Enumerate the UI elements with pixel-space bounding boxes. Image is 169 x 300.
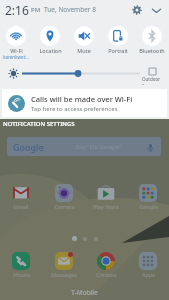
button[interactable]: Bluetooth <box>135 26 169 54</box>
staticText: Wi-Fi <box>10 47 23 54</box>
staticText: Apps <box>142 271 155 278</box>
staticText: Chrome <box>96 271 117 278</box>
staticText: NOTIFICATION SETTINGS <box>3 120 75 128</box>
button[interactable]: Collapse <box>148 2 164 18</box>
button[interactable]: Google <box>128 184 168 210</box>
staticText: Play Store <box>93 203 119 210</box>
staticText: Camera <box>54 203 75 210</box>
button[interactable]: Apps <box>128 252 168 278</box>
button[interactable]: Gmail <box>1 184 41 210</box>
staticText: Bluetooth <box>139 47 165 54</box>
other: Voice search <box>146 143 155 152</box>
staticText: Google <box>13 141 44 153</box>
staticText: Mute <box>77 47 91 54</box>
button[interactable]: Wi-Fi <box>0 26 33 60</box>
staticText: Outdoors <box>142 76 162 85</box>
button[interactable]: Portrait <box>101 26 135 54</box>
staticText: karenkwet... <box>3 54 29 60</box>
button[interactable]: Camera <box>44 184 84 210</box>
staticText: PM <box>31 6 41 14</box>
staticText: Tue, November 8 <box>44 5 96 14</box>
button[interactable]: Play Store <box>86 184 126 210</box>
staticText: Messages <box>51 271 77 278</box>
button[interactable]: Messages <box>44 252 84 278</box>
staticText: Calls will be made over Wi-Fi <box>31 94 133 104</box>
staticText: 2:16 <box>5 2 29 18</box>
button[interactable]: Outdoors <box>142 68 162 85</box>
button[interactable]: Chrome <box>86 252 126 278</box>
staticText: Say "Ok Google" <box>76 143 122 151</box>
staticText: T-Mobile <box>0 288 169 297</box>
staticText: Phone <box>13 271 30 278</box>
staticText: Google <box>139 203 158 210</box>
staticText: Portrait <box>108 47 128 54</box>
button[interactable]: Calls will be made over Wi-Fi <box>2 89 167 117</box>
button[interactable]: Phone <box>1 252 41 278</box>
staticText: Tap here to access preferences <box>31 105 118 113</box>
button[interactable]: Mute <box>67 26 101 54</box>
button[interactable]: Location <box>33 26 67 54</box>
button[interactable]: Settings <box>129 2 145 18</box>
staticText: Gmail <box>13 203 29 210</box>
staticText: Location <box>39 47 62 54</box>
button[interactable]: Google <box>7 137 161 156</box>
